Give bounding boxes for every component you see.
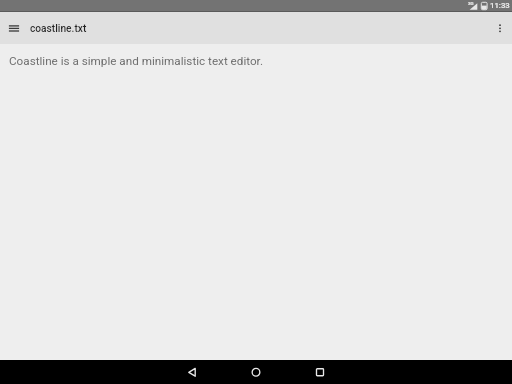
- staticText: 3G: [468, 1, 474, 6]
- button[interactable]: Back: [168, 360, 216, 384]
- staticText: 11:33: [490, 1, 510, 10]
- button[interactable]: More options: [493, 21, 507, 35]
- button[interactable]: Document text: [0, 44, 512, 360]
- staticText: Coastline is a simple and minimalistic t…: [9, 54, 263, 68]
- button[interactable]: Home: [232, 360, 280, 384]
- button[interactable]: Open navigation drawer: [7, 21, 21, 35]
- button[interactable]: Recent apps: [296, 360, 344, 384]
- staticText: coastline.txt: [30, 23, 87, 35]
